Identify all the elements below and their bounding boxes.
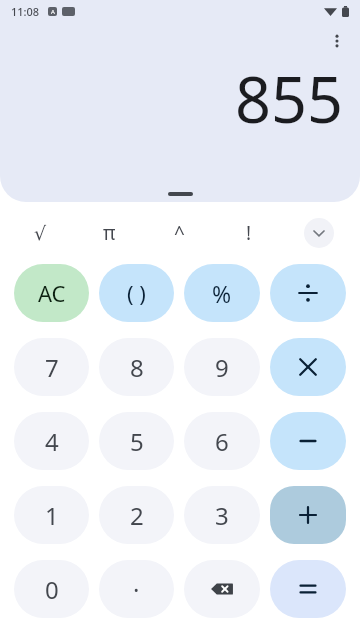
button[interactable]: Backspace (184, 560, 260, 618)
staticText: 4 (45, 425, 59, 458)
staticText: 6 (215, 425, 229, 458)
button[interactable]: ^ (144, 202, 214, 264)
staticText: ( ) (127, 278, 146, 308)
button[interactable]: Minus (270, 412, 346, 470)
staticText: π (103, 220, 116, 246)
button[interactable]: More options (317, 21, 357, 61)
button[interactable]: Multiply (270, 338, 346, 396)
staticText: 9 (215, 351, 229, 384)
button[interactable]: 0 (14, 560, 89, 618)
staticText: ^ (174, 220, 185, 246)
staticText: ! (246, 220, 252, 246)
button[interactable]: π (75, 202, 144, 264)
button[interactable]: 8 (99, 338, 174, 396)
staticText: 0 (45, 573, 59, 606)
staticText: 3 (215, 499, 229, 532)
button[interactable]: Plus (270, 486, 346, 544)
button[interactable]: Expand keypad (304, 218, 334, 248)
button[interactable]: · (99, 560, 174, 618)
staticText: A (51, 8, 55, 16)
staticText: 855 (235, 56, 344, 142)
staticText: · (133, 573, 140, 606)
staticText: 8 (130, 351, 144, 384)
button[interactable]: 6 (184, 412, 260, 470)
button[interactable]: % (184, 264, 260, 322)
button[interactable]: 2 (99, 486, 174, 544)
button[interactable]: √ (6, 202, 75, 264)
button[interactable]: 4 (14, 412, 89, 470)
button[interactable]: 1 (14, 486, 89, 544)
staticText: √ (34, 222, 47, 244)
staticText: 1 (45, 499, 59, 532)
staticText: AC (38, 278, 66, 308)
button[interactable]: 7 (14, 338, 89, 396)
button[interactable]: 3 (184, 486, 260, 544)
button[interactable]: ( ) (99, 264, 174, 322)
staticText: % (212, 278, 232, 309)
button[interactable]: 9 (184, 338, 260, 396)
button[interactable]: Divide (270, 264, 346, 322)
button[interactable]: Equals (270, 560, 346, 618)
staticText: 11:08 (11, 4, 40, 19)
button[interactable]: AC (14, 264, 89, 322)
staticText: 2 (130, 499, 144, 532)
button[interactable]: 5 (99, 412, 174, 470)
staticText: 7 (45, 351, 59, 384)
button[interactable]: ! (214, 202, 284, 264)
staticText: 5 (130, 425, 144, 458)
